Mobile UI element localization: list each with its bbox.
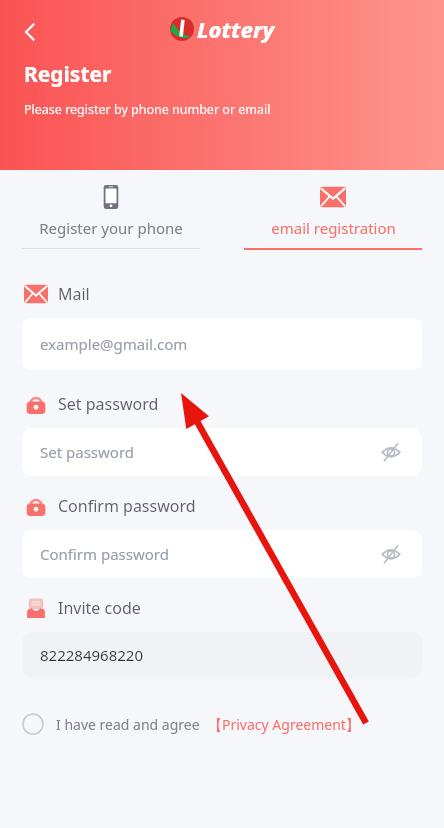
staticText: example@gmail.com [40, 334, 404, 354]
staticText: Set password [40, 442, 378, 462]
button[interactable]: 822284968220 [22, 632, 422, 678]
staticText: Mail [58, 283, 90, 305]
staticText: Confirm password [58, 495, 196, 517]
staticText: Lottery [197, 14, 275, 44]
staticText: Register your phone [39, 218, 183, 238]
button[interactable]: Show password [378, 541, 404, 567]
button[interactable]: Set password [22, 428, 422, 476]
staticText: Register [24, 60, 112, 89]
button[interactable]: 【Privacy Agreement】 [208, 715, 360, 734]
button[interactable]: Register your phone [0, 170, 222, 260]
staticText: Confirm password [40, 544, 378, 564]
staticText: 【Privacy Agreement】 [208, 715, 360, 734]
button[interactable]: I have read and agree [22, 704, 360, 744]
button[interactable]: email registration [222, 170, 444, 260]
button[interactable]: example@gmail.com [22, 318, 422, 370]
staticText: email registration [271, 218, 396, 238]
staticText: Set password [58, 393, 159, 415]
staticText: Invite code [58, 597, 141, 619]
button[interactable]: Show password [378, 439, 404, 465]
staticText: I have read and agree [56, 715, 200, 734]
button[interactable]: Confirm password [22, 530, 422, 578]
button[interactable]: Back [8, 10, 52, 54]
staticText: 822284968220 [40, 645, 404, 665]
staticText: Please register by phone number or email [24, 101, 271, 118]
